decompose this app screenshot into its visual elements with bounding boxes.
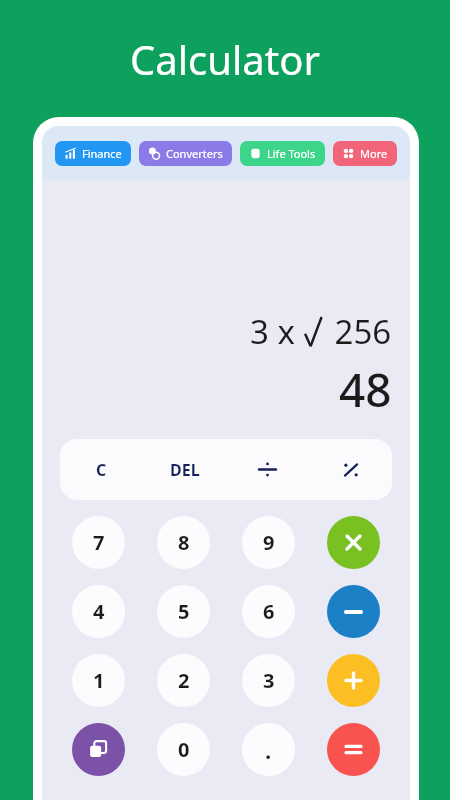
staticText: Finance (82, 146, 122, 161)
staticText: C (96, 459, 107, 481)
button[interactable]: Add (327, 654, 380, 707)
button[interactable]: 5 (157, 585, 210, 638)
staticText: 2 (178, 667, 190, 694)
button[interactable]: 0 (157, 723, 210, 776)
staticText: 7 (93, 529, 105, 556)
button[interactable]: Life Tools (240, 141, 325, 166)
staticText: Converters (166, 146, 223, 161)
staticText: 256 (326, 309, 392, 354)
staticText: More (360, 146, 388, 161)
button[interactable]: Percent (309, 439, 392, 500)
button[interactable]: 8 (157, 516, 210, 569)
button[interactable]: More (333, 141, 397, 166)
button[interactable]: 3 (242, 654, 295, 707)
staticText: 0 (178, 736, 190, 763)
staticText: 4 (93, 598, 105, 625)
staticText: . (265, 735, 272, 765)
staticText: 9 (263, 529, 275, 556)
staticText: 3 x (250, 309, 304, 354)
button[interactable]: Subtract (327, 585, 380, 638)
staticText: Calculator (130, 32, 320, 86)
button[interactable]: DEL (143, 439, 226, 500)
staticText: 5 (178, 598, 190, 625)
staticText: Life Tools (267, 146, 316, 161)
button[interactable]: Converters (139, 141, 232, 166)
staticText: 6 (263, 598, 275, 625)
button[interactable]: 7 (72, 516, 125, 569)
button[interactable]: Copy (72, 723, 125, 776)
button[interactable]: Equals (327, 723, 380, 776)
staticText: 3 (263, 667, 275, 694)
staticText: DEL (170, 459, 200, 481)
button[interactable]: 9 (242, 516, 295, 569)
button[interactable]: Multiply (327, 516, 380, 569)
button[interactable]: Divide (226, 439, 309, 500)
button[interactable]: . (242, 723, 295, 776)
staticText: 1 (93, 667, 105, 694)
staticText: 8 (178, 529, 190, 556)
button[interactable]: 1 (72, 654, 125, 707)
button[interactable]: 6 (242, 585, 295, 638)
staticText: 48 (339, 358, 392, 421)
button[interactable]: 4 (72, 585, 125, 638)
button[interactable]: C (60, 439, 143, 500)
button[interactable]: Finance (55, 141, 131, 166)
button[interactable]: 2 (157, 654, 210, 707)
